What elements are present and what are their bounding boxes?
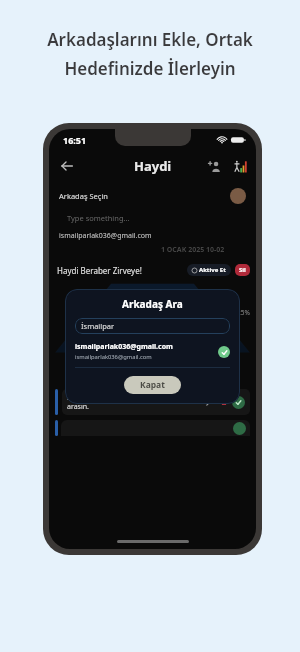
staticText: 1 OCAK 2025 10-02 xyxy=(161,245,225,255)
staticText: ismailparlak036@gmail.com xyxy=(75,342,173,352)
staticText: Arkadaşlarını Ekle, Ortak xyxy=(47,28,253,51)
other: Selected xyxy=(218,346,230,358)
staticText: Haydi xyxy=(134,157,172,175)
button[interactable] xyxy=(61,420,250,436)
staticText: Type something... xyxy=(67,213,130,223)
staticText: İsmail'i ara ya da İsmail, Deniz'i arası… xyxy=(67,393,204,411)
button[interactable]: Select friend xyxy=(230,188,246,204)
staticText: 16:51 xyxy=(63,134,87,146)
staticText: Sil xyxy=(239,266,246,274)
button[interactable]: Sil xyxy=(239,266,246,274)
staticText: Kapat xyxy=(140,379,165,391)
button[interactable]: Add step xyxy=(170,365,184,379)
staticText: Aktive Et xyxy=(199,266,226,274)
staticText: 25% xyxy=(237,308,250,317)
staticText: Arkadaş Seçin xyxy=(59,191,108,201)
button[interactable]: Aktive Et xyxy=(192,266,226,274)
staticText: İsmailpar xyxy=(81,321,115,331)
staticText: Haydi Beraber Zirveye! xyxy=(57,265,142,276)
button[interactable]: Edit xyxy=(204,396,216,408)
staticText: ismailparlak036@gmail.com xyxy=(75,353,152,361)
button[interactable]: ismailparlak036@gmail.com xyxy=(75,342,230,361)
button[interactable]: Complete xyxy=(232,396,245,409)
button[interactable]: Back xyxy=(55,154,79,178)
button[interactable]: Add friend xyxy=(204,156,224,176)
button[interactable]: İsmailpar xyxy=(81,318,224,334)
button[interactable]: Kapat xyxy=(140,379,165,391)
staticText: Hedefinizde İlerleyin xyxy=(64,57,236,80)
button[interactable]: Delete xyxy=(218,396,230,408)
staticText: ismailparlak036@gmail.com xyxy=(59,231,152,241)
button[interactable]: İsmail'i ara ya da İsmail, Deniz'i arası… xyxy=(67,389,245,415)
staticText: Adımlar xyxy=(122,365,163,380)
button[interactable]: Statistics xyxy=(230,156,250,176)
staticText: Arkadaş Ara xyxy=(122,297,183,311)
